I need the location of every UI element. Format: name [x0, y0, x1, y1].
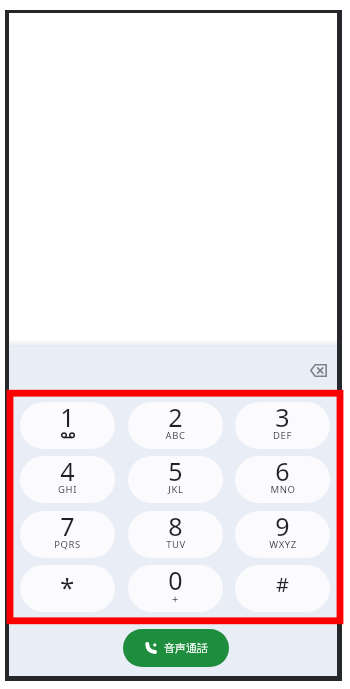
button[interactable]: 5	[128, 456, 223, 503]
staticText: PQRS	[54, 538, 81, 551]
staticText: ABC	[165, 429, 186, 442]
staticText: 0	[168, 565, 183, 597]
button[interactable]: 2	[128, 402, 223, 449]
staticText: +	[172, 591, 179, 606]
button[interactable]: 6	[235, 456, 330, 503]
staticText: 2	[168, 402, 183, 434]
button[interactable]: 9	[235, 511, 330, 558]
staticText: 6	[275, 456, 290, 488]
staticText: 5	[168, 456, 183, 488]
button[interactable]: 音声通話	[123, 629, 229, 667]
staticText: JKL	[168, 483, 184, 496]
staticText: 音声通話	[164, 641, 208, 655]
staticText: MNO	[270, 483, 296, 496]
staticText: 4	[60, 456, 75, 488]
button[interactable]: 7	[20, 511, 115, 558]
staticText: DEF	[273, 429, 292, 442]
staticText: TUV	[166, 538, 186, 551]
button[interactable]: 8	[128, 511, 223, 558]
staticText: 3	[275, 402, 290, 434]
staticText: GHI	[58, 483, 77, 496]
button[interactable]: *	[20, 565, 115, 612]
staticText: 1	[60, 402, 75, 434]
staticText: #	[276, 571, 289, 598]
staticText: 9	[275, 511, 290, 543]
staticText: WXYZ	[269, 538, 297, 551]
button[interactable]: 4	[20, 456, 115, 503]
button[interactable]: 1	[20, 402, 115, 449]
staticText: *	[60, 569, 75, 604]
staticText: 7	[60, 511, 75, 543]
staticText: 8	[168, 511, 183, 543]
button[interactable]: 3	[235, 402, 330, 449]
button[interactable]: 0	[128, 565, 223, 612]
button[interactable]: #	[235, 565, 330, 612]
button[interactable]	[306, 360, 331, 381]
